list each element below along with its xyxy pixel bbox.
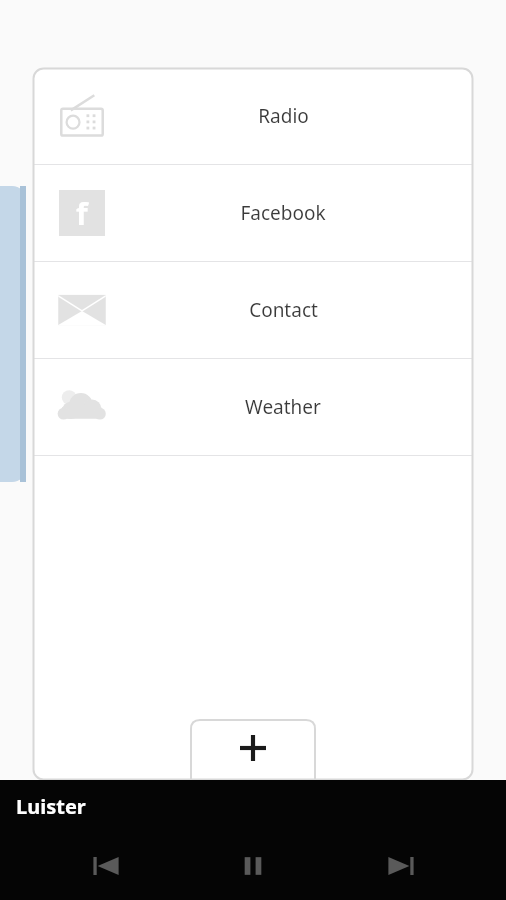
button[interactable]: Luister [0,780,506,832]
button[interactable]: f [33,165,473,261]
staticText: Facebook [240,200,326,226]
button[interactable] [190,717,316,779]
button[interactable]: Previous [64,835,148,897]
staticText: Luister [16,793,86,820]
button[interactable]: Contact [33,262,473,358]
staticText: Radio [258,103,309,129]
button[interactable]: Next [359,835,443,897]
staticText: Contact [249,297,318,323]
button[interactable]: Weather [33,359,473,455]
button[interactable]: Pause [211,835,295,897]
staticText: f [76,193,88,234]
button[interactable]: Radio [33,68,473,164]
staticText: Weather [245,394,321,420]
